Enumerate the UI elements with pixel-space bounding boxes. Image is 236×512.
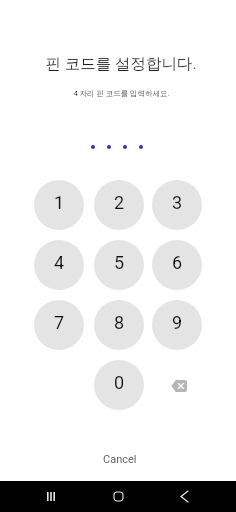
button[interactable]: 7 (34, 300, 84, 350)
staticText: Cancel (103, 453, 137, 466)
button[interactable]: 5 (94, 240, 144, 290)
button[interactable]: 9 (152, 300, 202, 350)
staticText: 1 (54, 192, 65, 213)
staticText: 4 자리 핀 코드를 입력하세요. (73, 89, 170, 98)
staticText: 3 (172, 192, 183, 213)
button[interactable]: 3 (152, 180, 202, 230)
button[interactable]: Back (168, 481, 200, 512)
staticText: 7 (54, 312, 65, 333)
staticText: 5 (114, 252, 125, 273)
staticText: 9 (172, 312, 183, 333)
staticText: 핀 코드를 설정합니다. (45, 54, 197, 74)
button[interactable]: 1 (34, 180, 84, 230)
staticText: 8 (114, 312, 125, 333)
button[interactable]: 2 (94, 180, 144, 230)
staticText: 2 (114, 192, 125, 213)
staticText: 6 (172, 252, 183, 273)
button[interactable]: Cancel (89, 447, 151, 472)
button[interactable]: Home (102, 481, 134, 512)
staticText: 0 (114, 372, 125, 393)
button[interactable]: 6 (152, 240, 202, 290)
staticText: 4 (54, 252, 65, 273)
button[interactable]: Backspace (152, 360, 202, 410)
button[interactable]: 8 (94, 300, 144, 350)
button[interactable]: 4 (34, 240, 84, 290)
button[interactable]: Recent apps (35, 481, 67, 512)
button[interactable]: 0 (94, 360, 144, 410)
